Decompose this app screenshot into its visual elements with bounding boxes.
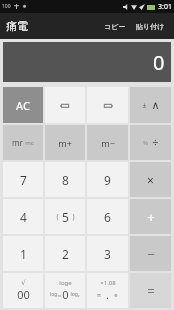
staticText: π: [97, 291, 101, 299]
button[interactable]: (: [45, 199, 85, 234]
staticText: AC: [16, 98, 30, 113]
button[interactable]: m−: [87, 125, 128, 160]
staticText: 痛電: [6, 19, 28, 33]
button[interactable]: 3: [87, 236, 128, 271]
staticText: .: [106, 287, 109, 302]
button[interactable]: ×: [130, 162, 171, 197]
staticText: 2: [62, 246, 69, 262]
button[interactable]: 2: [45, 236, 85, 271]
button[interactable]: 9: [87, 162, 128, 197]
staticText: 4: [20, 209, 27, 225]
button[interactable]: √: [3, 273, 43, 308]
button[interactable]: Undo: [45, 87, 85, 123]
staticText: −: [147, 245, 155, 263]
staticText: 3: [104, 246, 111, 262]
button[interactable]: =: [130, 273, 171, 308]
staticText: %: [143, 139, 148, 147]
staticText: 1: [20, 246, 27, 262]
button[interactable]: 貼り付け: [132, 18, 169, 35]
button[interactable]: 1: [3, 236, 43, 271]
button[interactable]: +: [130, 199, 171, 234]
staticText: loge: [59, 279, 72, 287]
staticText: log₁₀: [50, 291, 61, 298]
button[interactable]: ×1.08: [87, 273, 128, 308]
staticText: e: [114, 291, 118, 299]
staticText: =: [147, 282, 155, 300]
staticText: √: [21, 279, 26, 287]
staticText: ): [72, 212, 75, 222]
staticText: コピー: [104, 22, 126, 31]
button[interactable]: 8: [45, 162, 85, 197]
button[interactable]: Redo: [87, 87, 128, 123]
staticText: 9: [104, 172, 111, 188]
staticText: 0: [62, 287, 69, 302]
staticText: 貼り付け: [136, 22, 165, 31]
button[interactable]: コピー: [100, 18, 130, 35]
staticText: +: [147, 208, 155, 226]
staticText: (: [56, 212, 59, 222]
staticText: 100: [2, 3, 11, 10]
staticText: 5: [62, 209, 69, 225]
staticText: 3:01: [158, 2, 172, 12]
staticText: ×: [147, 172, 154, 188]
staticText: 0: [153, 49, 165, 76]
button[interactable]: −: [130, 236, 171, 271]
staticText: 6: [104, 209, 111, 225]
staticText: m+: [58, 137, 72, 149]
staticText: ÷: [152, 135, 159, 150]
button[interactable]: 6: [87, 199, 128, 234]
staticText: ∧: [151, 99, 160, 112]
staticText: 00: [17, 287, 30, 302]
staticText: 7: [20, 172, 27, 188]
staticText: mc: [25, 139, 34, 147]
staticText: mr: [12, 137, 23, 148]
staticText: log₂: [70, 291, 80, 298]
staticText: 8: [62, 172, 69, 188]
button[interactable]: m+: [45, 125, 85, 160]
button[interactable]: loge: [45, 273, 85, 308]
staticText: ±: [142, 101, 147, 111]
button[interactable]: 7: [3, 162, 43, 197]
button[interactable]: 4: [3, 199, 43, 234]
button[interactable]: AC: [3, 87, 43, 123]
button[interactable]: mr: [3, 125, 43, 160]
staticText: ×1.08: [100, 279, 116, 287]
button[interactable]: ±: [130, 87, 171, 123]
button[interactable]: %: [130, 125, 171, 160]
staticText: m−: [101, 137, 115, 149]
